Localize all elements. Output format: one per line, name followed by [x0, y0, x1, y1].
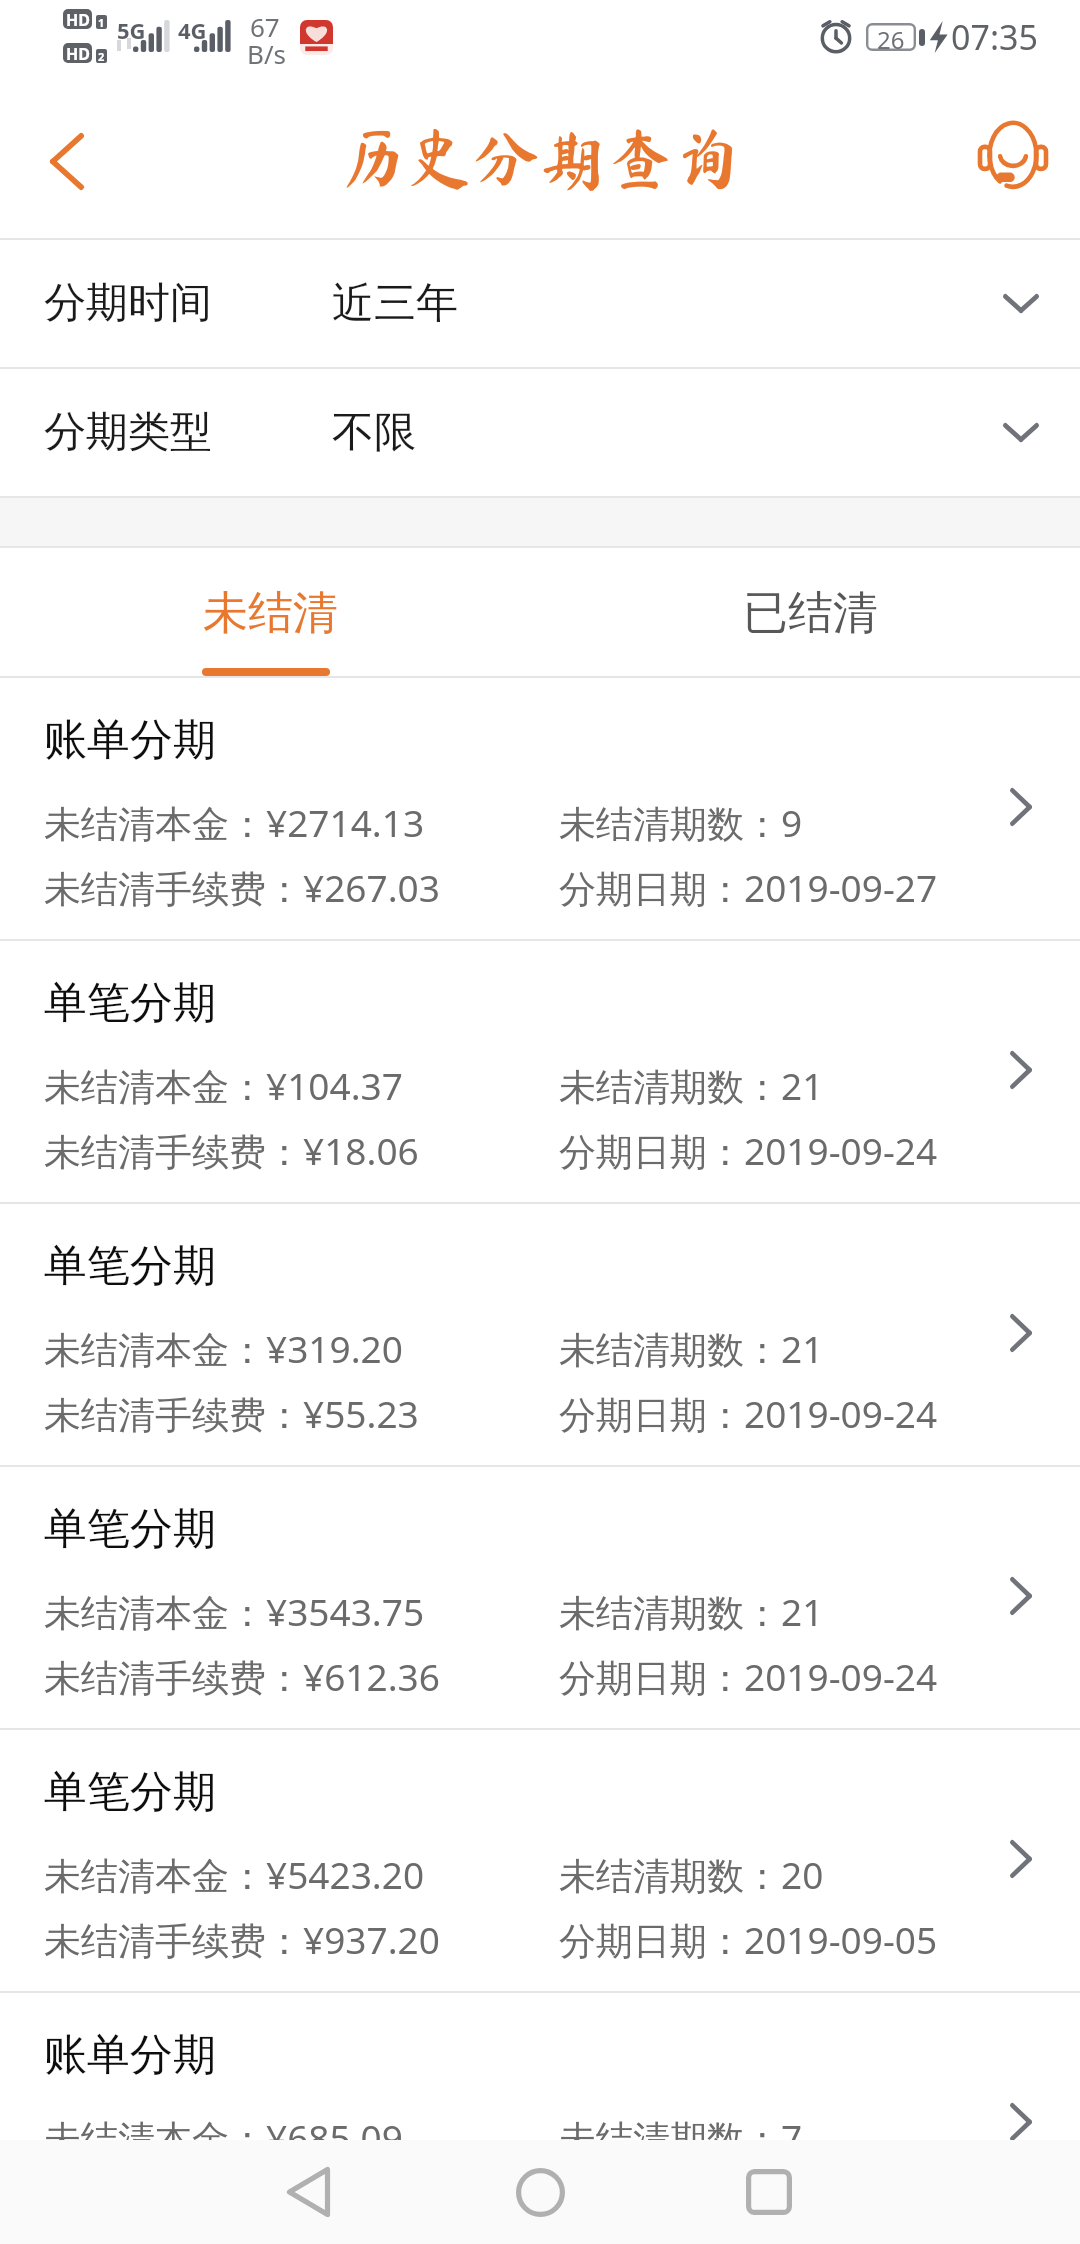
staticText: 未结清本金：¥2714.13 — [44, 797, 425, 848]
staticText: 分期日期：2019-09-24 — [559, 1388, 938, 1439]
button[interactable]: Home — [470, 2140, 610, 2244]
staticText: 分期类型 — [44, 406, 212, 459]
button[interactable]: Back — [12, 115, 124, 227]
staticText: 未结清手续费：¥18.06 — [44, 1125, 419, 1176]
staticText: 账单分期 — [44, 713, 216, 767]
button[interactable]: 单笔分期 — [0, 1730, 1080, 1991]
staticText: 07:35 — [951, 14, 1038, 60]
button[interactable]: 已结清 — [540, 548, 1080, 678]
staticText: 未结清手续费：¥612.36 — [44, 1651, 440, 1702]
button[interactable]: Back — [238, 2140, 378, 2244]
staticText: 未结清本金：¥5423.20 — [44, 1849, 425, 1900]
staticText: 5G — [117, 15, 146, 45]
staticText: 未结清本金：¥685.09 — [44, 2112, 403, 2163]
staticText: 账单分期 — [44, 2028, 216, 2082]
staticText: 历史分期查询 — [339, 124, 741, 191]
staticText: 1 — [98, 15, 105, 29]
staticText: 已结清 — [743, 585, 878, 642]
button[interactable]: 单笔分期 — [0, 1467, 1080, 1728]
staticText: 分期时间 — [44, 277, 212, 330]
button[interactable]: 单笔分期 — [0, 1204, 1080, 1465]
button[interactable]: 分期类型 — [0, 369, 1080, 496]
staticText: 不限 — [332, 406, 416, 459]
staticText: 未结清期数：20 — [559, 1849, 824, 1900]
staticText: 单笔分期 — [44, 976, 216, 1030]
staticText: 未结清期数：21 — [559, 1323, 824, 1374]
staticText: 分期日期：2019-08-27 — [559, 2177, 938, 2228]
staticText: 未结清期数：9 — [559, 797, 803, 848]
staticText: 近三年 — [332, 277, 458, 330]
staticText: HD — [66, 43, 90, 63]
staticText: 67 — [250, 9, 280, 44]
staticText: 未结清期数：7 — [559, 2112, 803, 2163]
staticText: 分期日期：2019-09-24 — [559, 1651, 938, 1702]
staticText: 未结清期数：21 — [559, 1060, 824, 1111]
staticText: 分期日期：2019-09-05 — [559, 1914, 938, 1965]
button[interactable]: 单笔分期 — [0, 941, 1080, 1202]
staticText: 未结清期数：21 — [559, 1586, 824, 1637]
staticText: 未结清 — [203, 585, 338, 642]
staticText: 未结清手续费：¥55.23 — [44, 1388, 419, 1439]
button[interactable]: 未结清 — [0, 548, 540, 678]
staticText: B/s — [247, 36, 287, 71]
staticText: HD — [66, 9, 90, 29]
staticText: 单笔分期 — [44, 1502, 216, 1556]
staticText: 2 — [98, 49, 105, 63]
staticText: 未结清手续费：¥937.20 — [44, 1914, 440, 1965]
button[interactable]: 分期时间 — [0, 240, 1080, 367]
staticText: 单笔分期 — [44, 1765, 216, 1819]
staticText: 未结清本金：¥319.20 — [44, 1323, 403, 1374]
button[interactable]: Customer service — [956, 115, 1068, 227]
button[interactable]: 账单分期 — [0, 1993, 1080, 2244]
staticText: 分期日期：2019-09-24 — [559, 1125, 938, 1176]
staticText: 未结清本金：¥104.37 — [44, 1060, 403, 1111]
staticText: 未结清本金：¥3543.75 — [44, 1586, 425, 1637]
staticText: 未结清手续费：¥267.03 — [44, 862, 440, 913]
button[interactable]: Recents — [699, 2140, 839, 2244]
staticText: 26 — [877, 23, 905, 51]
staticText: 单笔分期 — [44, 1239, 216, 1293]
staticText: 未结清手续费：¥99.99 — [44, 2177, 419, 2228]
staticText: 分期日期：2019-09-27 — [559, 862, 938, 913]
staticText: 4G — [178, 15, 207, 45]
button[interactable]: 账单分期 — [0, 678, 1080, 939]
